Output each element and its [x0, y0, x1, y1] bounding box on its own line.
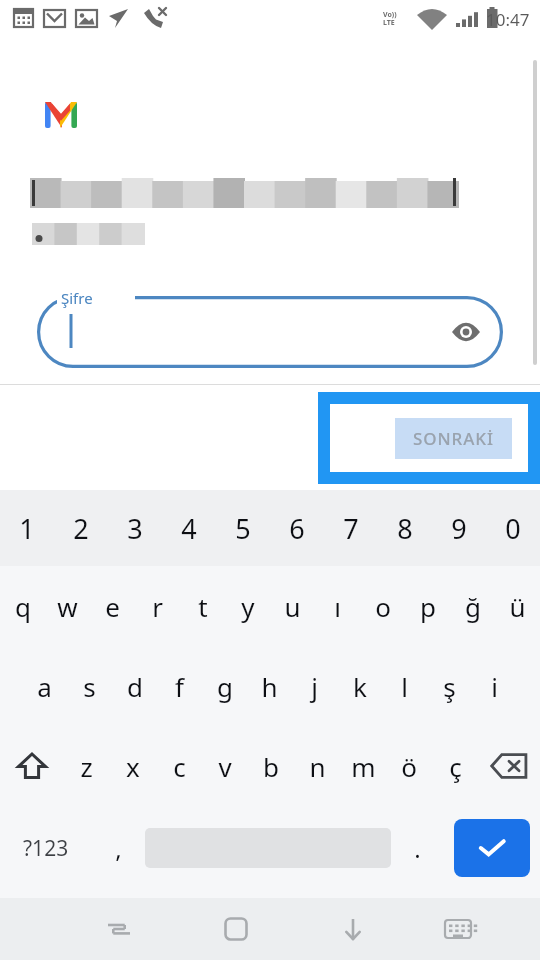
staticText: p [420, 589, 436, 624]
staticText: l [401, 669, 408, 704]
button[interactable]: ı [315, 566, 360, 646]
button[interactable]: w [45, 566, 90, 646]
button[interactable]: f [157, 646, 202, 726]
button[interactable]: 2 [54, 490, 108, 566]
button[interactable]: j [292, 646, 337, 726]
staticText: t [198, 589, 208, 624]
staticText: h [261, 669, 278, 704]
button[interactable]: d [112, 646, 157, 726]
button[interactable]: n [294, 726, 340, 806]
staticText: 1 [19, 510, 35, 547]
staticText: e [105, 589, 120, 624]
staticText: , [115, 832, 122, 865]
button[interactable]: 7 [324, 490, 378, 566]
staticText: 5 [235, 510, 251, 547]
button[interactable]: ğ [450, 566, 495, 646]
button[interactable]: r [135, 566, 180, 646]
button[interactable]: s [67, 646, 112, 726]
button[interactable]: v [202, 726, 248, 806]
staticText: 10:47 [486, 8, 530, 31]
button[interactable]: . [391, 806, 444, 890]
staticText: x [126, 749, 140, 784]
staticText: j [311, 669, 318, 704]
staticText: m [351, 749, 376, 784]
staticText: s [83, 669, 96, 704]
button[interactable]: m [340, 726, 386, 806]
staticText: v [218, 749, 232, 784]
staticText: 8 [397, 510, 413, 547]
button[interactable]: 6 [270, 490, 324, 566]
staticText: ö [401, 749, 417, 784]
staticText: z [80, 749, 93, 784]
button[interactable]: i [472, 646, 517, 726]
staticText: o [375, 589, 391, 624]
staticText: k [353, 669, 367, 704]
staticText: c [173, 749, 186, 784]
staticText: b [263, 749, 279, 784]
button[interactable]: e [90, 566, 135, 646]
button[interactable]: l [382, 646, 427, 726]
button[interactable]: u [270, 566, 315, 646]
staticText: ğ [465, 589, 481, 624]
staticText: f [175, 669, 184, 704]
button[interactable]: 9 [432, 490, 486, 566]
button[interactable]: y [225, 566, 270, 646]
button[interactable]: Tamam [454, 819, 530, 877]
button[interactable]: SONRAKİ [330, 404, 528, 472]
staticText: 2 [73, 510, 89, 547]
staticText: ş [443, 669, 456, 704]
staticText: ü [509, 589, 526, 624]
button[interactable]: , [92, 806, 145, 890]
button[interactable]: ş [427, 646, 472, 726]
staticText: 7 [343, 510, 359, 547]
button[interactable]: Klavyeyi kapat [294, 898, 411, 960]
button[interactable]: b [248, 726, 294, 806]
button[interactable]: p [405, 566, 450, 646]
button[interactable]: Geri sil [478, 726, 540, 806]
staticText: i [491, 669, 498, 704]
button[interactable]: z [63, 726, 110, 806]
button[interactable]: 8 [378, 490, 432, 566]
button[interactable]: Şifre [37, 296, 503, 368]
button[interactable]: Ana ekran [177, 898, 294, 960]
staticText: 9 [451, 510, 467, 547]
staticText: 0 [505, 510, 521, 547]
staticText: a [37, 669, 52, 704]
button[interactable]: h [247, 646, 292, 726]
staticText: d [127, 669, 143, 704]
button[interactable]: ?123 [0, 806, 92, 890]
staticText: ç [449, 749, 462, 784]
staticText: Vo)) LTE [383, 10, 399, 27]
staticText: r [152, 589, 163, 624]
button[interactable]: o [360, 566, 405, 646]
button[interactable]: Shift [0, 726, 63, 806]
button[interactable]: q [0, 566, 45, 646]
staticText: 4 [181, 510, 197, 547]
button[interactable]: Şifreyi göster [449, 315, 483, 349]
staticText: u [284, 589, 301, 624]
staticText: ı [334, 589, 341, 624]
button[interactable]: c [156, 726, 202, 806]
button[interactable]: t [180, 566, 225, 646]
staticText: n [309, 749, 326, 784]
button[interactable]: 4 [162, 490, 216, 566]
staticText: q [15, 589, 31, 624]
staticText: w [57, 589, 78, 624]
button[interactable]: 5 [216, 490, 270, 566]
button[interactable]: 0 [486, 490, 540, 566]
button[interactable]: 3 [108, 490, 162, 566]
button[interactable]: ö [386, 726, 432, 806]
staticText: Şifre [61, 288, 93, 308]
button[interactable]: ü [495, 566, 540, 646]
button[interactable]: k [337, 646, 382, 726]
button[interactable]: Klavye seç [411, 898, 505, 960]
staticText: SONRAKİ [413, 427, 494, 450]
button[interactable]: g [202, 646, 247, 726]
button[interactable]: x [110, 726, 156, 806]
staticText: 6 [289, 510, 305, 547]
button[interactable]: Son uygulamalar [60, 898, 177, 960]
button[interactable]: ç [432, 726, 478, 806]
button[interactable]: 1 [0, 490, 54, 566]
button[interactable]: a [22, 646, 67, 726]
